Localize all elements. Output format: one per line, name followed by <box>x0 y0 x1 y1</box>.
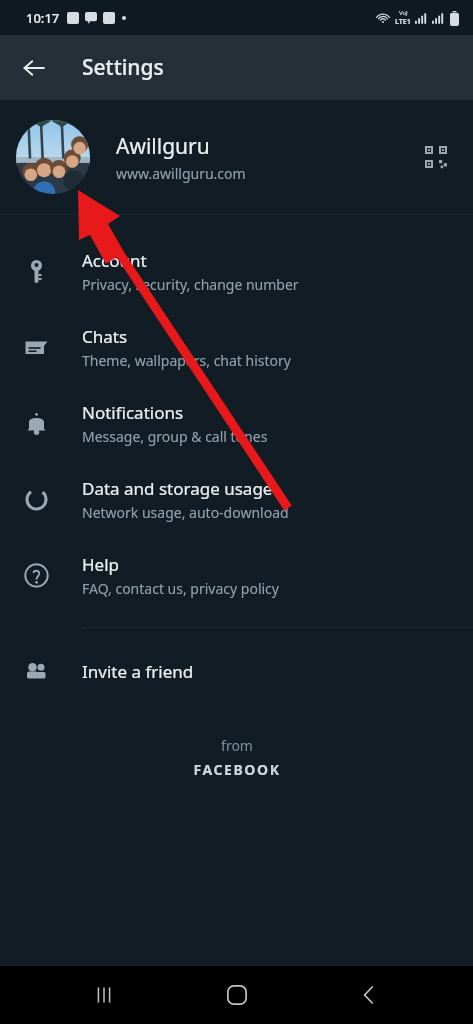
staticText: Notifications <box>82 401 184 424</box>
button[interactable]: Back <box>12 46 56 90</box>
button[interactable]: Invite a friend <box>0 640 473 702</box>
button[interactable]: Recents <box>76 967 132 1023</box>
button[interactable]: Chats <box>0 309 473 385</box>
staticText: FACEBOOK <box>193 760 281 779</box>
staticText: LTE1 <box>395 17 411 27</box>
staticText: FAQ, contact us, privacy policy <box>82 579 279 598</box>
staticText: Awillguru <box>116 132 210 161</box>
staticText: Settings <box>82 53 164 82</box>
staticText: Privacy, security, change number <box>82 275 299 294</box>
button[interactable]: Data and storage usage <box>0 461 473 537</box>
staticText: Account <box>82 249 147 272</box>
staticText: www.awillguru.com <box>116 164 246 183</box>
staticText: Data and storage usage <box>82 477 273 500</box>
staticText: Network usage, auto-download <box>82 503 289 522</box>
staticText: Theme, wallpapers, chat history <box>82 351 291 370</box>
staticText: 10:17 <box>26 9 60 27</box>
staticText: VoJ <box>399 9 408 17</box>
button[interactable]: Back <box>341 967 397 1023</box>
staticText: Message, group & call tones <box>82 427 268 446</box>
staticText: Chats <box>82 325 128 348</box>
button[interactable]: Awillguru <box>0 100 473 214</box>
staticText: Help <box>82 553 120 576</box>
staticText: from <box>221 736 253 755</box>
staticText: Invite a friend <box>82 660 194 683</box>
button[interactable]: QR code <box>415 136 457 178</box>
button[interactable]: Home <box>209 967 265 1023</box>
button[interactable]: Account <box>0 233 473 309</box>
button[interactable]: Help <box>0 537 473 613</box>
button[interactable]: Notifications <box>0 385 473 461</box>
